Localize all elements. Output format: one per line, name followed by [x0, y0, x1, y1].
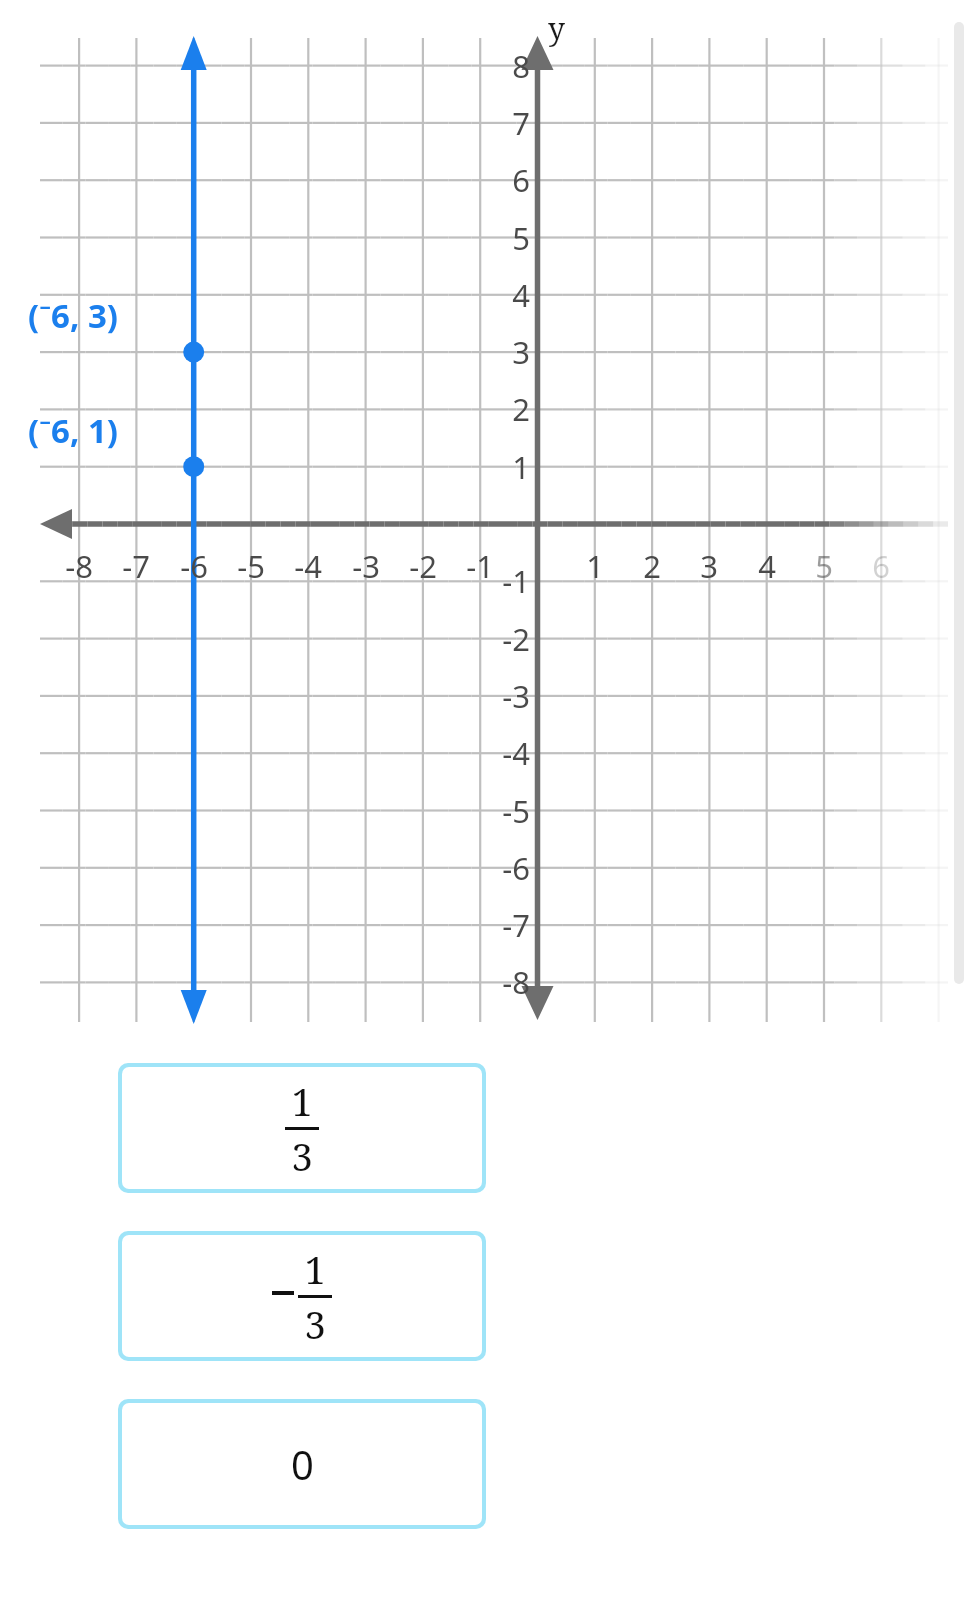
staticText: 3: [512, 331, 530, 373]
staticText: 2: [512, 388, 530, 430]
staticText: 5: [815, 545, 833, 587]
staticText: 3: [291, 1130, 313, 1182]
staticText: -7: [502, 904, 530, 946]
staticText: -2: [502, 618, 530, 660]
staticText: -1: [466, 545, 494, 587]
staticText: -5: [502, 790, 530, 832]
staticText: -3: [352, 545, 380, 587]
button[interactable]: 1: [118, 1231, 486, 1361]
staticText: 1: [586, 545, 604, 587]
staticText: -5: [237, 545, 265, 587]
staticText: (⁻6, 3): [28, 293, 118, 338]
staticText: -1: [502, 560, 530, 602]
staticText: -2: [409, 545, 437, 587]
staticText: 3: [304, 1298, 326, 1350]
staticText: (⁻6, 1): [28, 408, 118, 453]
staticText: 3: [700, 545, 718, 587]
staticText: 8: [512, 45, 530, 87]
staticText: y: [548, 8, 565, 49]
button[interactable]: 0: [118, 1399, 486, 1529]
button[interactable]: 1: [118, 1063, 486, 1193]
staticText: 1: [512, 446, 530, 488]
staticText: 6: [872, 545, 890, 587]
staticText: -8: [502, 961, 530, 1003]
staticText: 1: [291, 1075, 313, 1127]
staticText: -8: [65, 545, 93, 587]
staticText: 7: [512, 102, 530, 144]
staticText: 2: [643, 545, 661, 587]
staticText: 1: [304, 1243, 326, 1295]
staticText: 4: [512, 274, 530, 316]
staticText: -3: [502, 675, 530, 717]
staticText: -7: [122, 545, 150, 587]
staticText: -4: [502, 732, 530, 774]
staticText: 4: [758, 545, 776, 587]
staticText: -6: [502, 847, 530, 889]
staticText: 6: [512, 159, 530, 201]
staticText: -6: [180, 545, 208, 587]
staticText: 0: [291, 1437, 314, 1491]
staticText: -4: [294, 545, 322, 587]
staticText: 5: [512, 217, 530, 259]
